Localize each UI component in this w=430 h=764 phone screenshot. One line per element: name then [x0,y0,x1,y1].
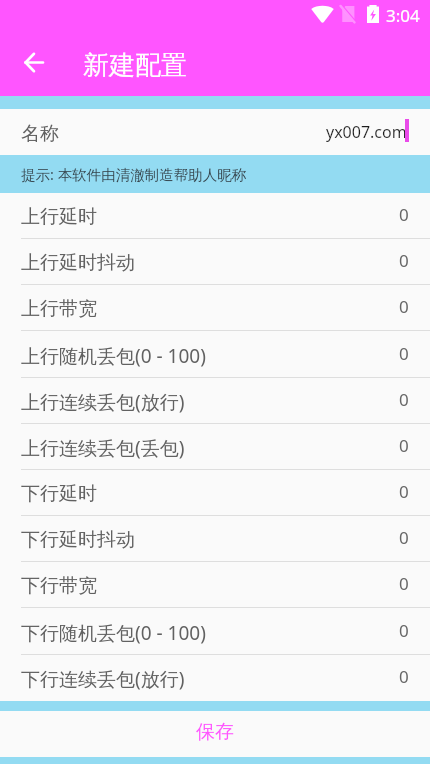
button[interactable]: 上行带宽 [0,285,430,331]
staticText: 下行随机丢包(0 - 100) [21,620,206,646]
staticText: 上行随机丢包(0 - 100) [21,343,206,369]
staticText: 上行延时抖动 [21,251,135,275]
staticText: 0 [399,526,409,549]
button[interactable]: 保存 [0,711,430,757]
button[interactable]: 下行延时 [0,470,430,516]
staticText: 上行延时 [21,205,97,229]
staticText: 上行连续丢包(放行) [21,389,185,415]
button[interactable]: Back [10,41,58,89]
staticText: 上行连续丢包(丢包) [21,435,185,461]
button[interactable]: 下行延时抖动 [0,516,430,562]
button[interactable]: 上行延时抖动 [0,239,430,285]
staticText: 下行带宽 [21,574,97,598]
staticText: 0 [399,665,409,688]
staticText: 下行连续丢包(放行) [21,666,185,692]
staticText: 0 [399,480,409,503]
staticText: yx007.com [326,121,407,143]
staticText: 保存 [196,720,234,744]
button[interactable]: 下行带宽 [0,562,430,608]
staticText: 0 [399,572,409,595]
button[interactable]: 下行连续丢包(放行) [0,655,430,701]
staticText: 3:04 [386,4,420,27]
button[interactable]: 上行连续丢包(丢包) [0,424,430,470]
staticText: 下行延时 [21,482,97,506]
button[interactable]: 名称 [0,109,430,155]
button[interactable]: 上行连续丢包(放行) [0,378,430,424]
staticText: 0 [399,342,409,365]
button[interactable]: 上行延时 [0,193,430,239]
staticText: 0 [399,203,409,226]
button[interactable]: 下行随机丢包(0 - 100) [0,609,430,655]
staticText: 提示: 本软件由清澈制造帮助人昵称 [21,164,247,184]
staticText: 0 [399,619,409,642]
staticText: 上行带宽 [21,297,97,321]
staticText: 0 [399,434,409,457]
button[interactable]: 上行随机丢包(0 - 100) [0,332,430,378]
staticText: 0 [399,388,409,411]
staticText: 0 [399,295,409,318]
staticText: 名称 [21,122,59,146]
staticText: 新建配置 [83,49,187,82]
staticText: 下行延时抖动 [21,528,135,552]
staticText: 0 [399,249,409,272]
